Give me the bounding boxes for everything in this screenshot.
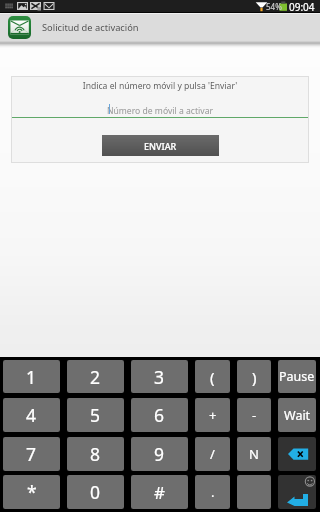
button[interactable]: ENVIAR [102, 135, 219, 156]
staticText: ) [252, 367, 257, 387]
button[interactable]: Pause [278, 360, 316, 393]
staticText: 5 [90, 403, 101, 427]
staticText: ENVIAR [144, 140, 177, 152]
button[interactable]: / [195, 437, 230, 471]
button[interactable]: ( [195, 360, 230, 393]
staticText: Pause [279, 368, 315, 385]
button[interactable]: ) [237, 360, 271, 393]
staticText: 2 [90, 365, 101, 389]
staticText: Wait [284, 407, 311, 424]
button[interactable]: Wait [278, 398, 316, 432]
staticText: 54% [266, 1, 282, 12]
staticText: 1 [26, 365, 37, 389]
button[interactable] [237, 475, 271, 509]
button[interactable]: Número de móvil a activar [12, 102, 308, 118]
button[interactable]: - [237, 398, 271, 432]
staticText: # [154, 481, 165, 504]
button[interactable]: Solicitud de activación [8, 16, 31, 39]
button[interactable]: 7 [3, 437, 60, 471]
button[interactable]: N [237, 437, 271, 471]
button[interactable]: 6 [131, 398, 188, 432]
staticText: 3 [154, 365, 165, 389]
button[interactable]: Enter [278, 475, 316, 509]
staticText: / [210, 445, 215, 463]
button[interactable]: 2 [67, 360, 124, 393]
button[interactable]: 1 [3, 360, 60, 393]
button[interactable]: 4 [3, 398, 60, 432]
button[interactable]: . [195, 475, 230, 509]
button[interactable]: 9 [131, 437, 188, 471]
staticText: + [209, 406, 217, 424]
staticText: . [211, 483, 215, 501]
staticText: ( [210, 367, 215, 387]
staticText: N [249, 445, 259, 463]
staticText: 7 [26, 442, 37, 466]
staticText: 8 [90, 442, 101, 466]
button[interactable]: 3 [131, 360, 188, 393]
staticText: 09:04 [289, 0, 315, 12]
staticText: Indica el número móvil y pulsa 'Enviar' [12, 80, 308, 92]
button[interactable]: # [131, 475, 188, 509]
button[interactable]: * [3, 475, 60, 509]
staticText: * [27, 480, 37, 504]
staticText: Solicitud de activación [42, 21, 139, 34]
button[interactable]: 8 [67, 437, 124, 471]
staticText: 6 [154, 403, 165, 427]
button[interactable]: 0 [67, 475, 124, 509]
staticText: 4 [26, 403, 37, 427]
button[interactable]: 5 [67, 398, 124, 432]
staticText: 0 [90, 480, 101, 504]
button[interactable]: Delete [278, 437, 316, 471]
staticText: Número de móvil a activar [12, 105, 308, 117]
button[interactable]: + [195, 398, 230, 432]
staticText: - [252, 406, 257, 424]
staticText: 9 [154, 442, 165, 466]
